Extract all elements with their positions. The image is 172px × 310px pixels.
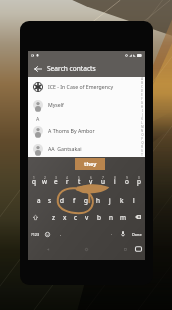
button[interactable]: a (33, 194, 44, 206)
button[interactable]: k (116, 194, 128, 206)
button[interactable]: e (50, 175, 61, 187)
staticText: v (85, 213, 89, 222)
staticText: 5 (78, 176, 80, 180)
staticText: d (60, 196, 64, 205)
button[interactable]: p (133, 175, 145, 187)
button[interactable]: AA Gantsakai (28, 140, 145, 157)
button[interactable]: Shift (28, 211, 42, 223)
staticText: l (133, 196, 135, 205)
staticText: . (111, 231, 113, 237)
button[interactable]: Backspace (131, 211, 145, 223)
staticText: Done (132, 232, 142, 237)
staticText: B (141, 81, 143, 85)
staticText: D (141, 89, 143, 93)
button[interactable]: w (39, 175, 50, 187)
staticText: E (141, 93, 143, 97)
staticText: Q (141, 141, 144, 145)
staticText: 7 (102, 176, 104, 180)
button[interactable]: h (92, 194, 104, 206)
button[interactable]: r (61, 175, 73, 187)
button[interactable]: j (104, 194, 116, 206)
staticText: n (109, 213, 113, 222)
button[interactable]: u (97, 175, 109, 187)
staticText: z (52, 213, 56, 222)
staticText: Myself (48, 101, 64, 108)
staticText: C (141, 85, 143, 89)
button[interactable]: s (44, 194, 56, 206)
button[interactable]: Recents (106, 246, 145, 252)
staticText: A (141, 77, 143, 81)
staticText: P (141, 137, 143, 141)
staticText: 4 (66, 176, 68, 180)
staticText: 1 (33, 176, 35, 180)
staticText: m (120, 213, 126, 222)
staticText: A Thoms By Ambor (48, 127, 95, 134)
button[interactable]: c (70, 211, 81, 223)
button[interactable]: y (85, 175, 97, 187)
staticText: 9 (126, 176, 128, 180)
staticText: O (141, 133, 144, 137)
staticText: they (84, 160, 97, 168)
staticText: p (137, 177, 141, 186)
staticText: q (32, 177, 36, 186)
button[interactable]: n (105, 211, 117, 223)
button[interactable]: i (109, 175, 121, 187)
staticText: c (74, 213, 78, 222)
button[interactable]: Back (28, 246, 67, 252)
staticText: k (120, 196, 124, 205)
staticText: G (141, 101, 143, 105)
button[interactable]: Emoji (42, 228, 52, 240)
button[interactable]: x (59, 211, 70, 223)
staticText: 2 (44, 176, 46, 180)
staticText: j (109, 196, 111, 205)
staticText: a (37, 196, 41, 205)
staticText: 8 (114, 176, 116, 180)
staticText: N (141, 129, 143, 133)
button[interactable]: q (28, 175, 39, 187)
button[interactable]: m (117, 211, 129, 223)
button[interactable]: , (58, 228, 64, 240)
staticText: g (84, 196, 88, 205)
button[interactable]: . (109, 228, 115, 240)
staticText: 3 (55, 176, 57, 180)
button[interactable]: b (93, 211, 105, 223)
button[interactable]: they (75, 158, 105, 170)
staticText: i (114, 177, 116, 186)
button[interactable]: Voice input (118, 228, 128, 240)
staticText: L (141, 121, 143, 125)
button[interactable]: l (128, 194, 140, 206)
button[interactable]: ICE - In Case of Emergency (28, 78, 145, 95)
staticText: T (141, 153, 143, 157)
staticText: S (141, 149, 143, 153)
staticText: I (142, 109, 143, 113)
button[interactable]: Home (67, 246, 106, 252)
button[interactable]: Screenshot (135, 246, 142, 252)
button[interactable]: d (56, 194, 68, 206)
staticText: s (48, 196, 52, 205)
staticText: R (141, 145, 143, 149)
button[interactable]: t (73, 175, 85, 187)
button[interactable]: z (48, 211, 59, 223)
staticText: ICE - In Case of Emergency (48, 83, 114, 90)
staticText: AA Gantsakai (48, 145, 82, 152)
staticText: x (63, 213, 67, 222)
staticText: , (60, 231, 62, 237)
staticText: o (125, 177, 129, 186)
staticText: M (141, 125, 144, 129)
button[interactable]: v (81, 211, 93, 223)
button[interactable]: Done (131, 228, 143, 240)
staticText: y (89, 177, 93, 186)
button[interactable]: ?123 (30, 228, 41, 240)
button[interactable]: f (68, 194, 80, 206)
button[interactable]: Myself (28, 96, 145, 113)
button[interactable]: Back (28, 60, 47, 77)
button[interactable]: A Thoms By Ambor (28, 122, 145, 139)
staticText: 6 (90, 176, 92, 180)
button[interactable]: g (80, 194, 92, 206)
button[interactable]: o (121, 175, 133, 187)
staticText: h (96, 196, 100, 205)
staticText: t (78, 177, 81, 186)
staticText: K (141, 117, 143, 121)
staticText: w (42, 177, 48, 186)
